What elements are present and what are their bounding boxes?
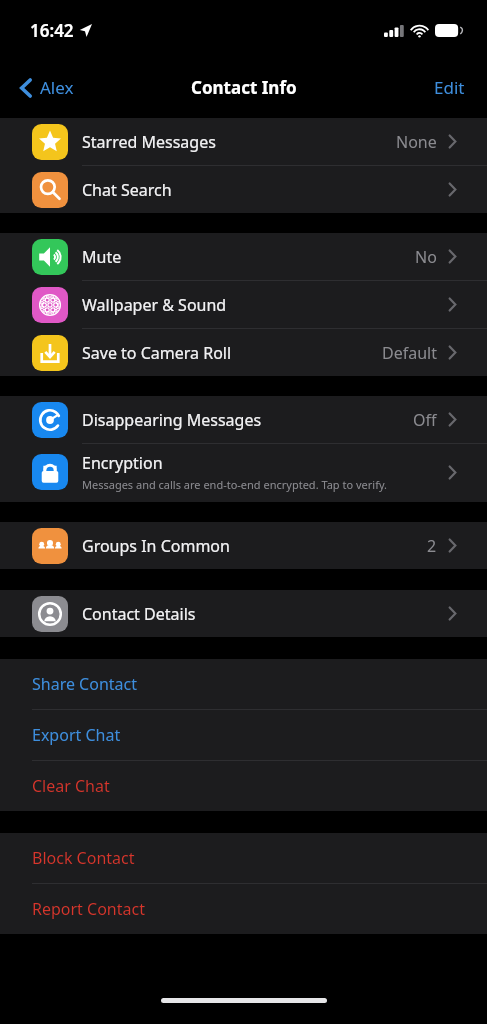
other: Encryption [32,454,68,490]
staticText: 2 [427,535,437,557]
button[interactable]: Alex [0,68,86,107]
button[interactable]: Clear Chat [0,761,487,811]
staticText: Contact Info [191,76,297,99]
button[interactable]: Export Chat [0,710,487,761]
button[interactable]: Mute [0,233,487,281]
staticText: 16:42 [30,19,74,42]
other: Mute [32,239,68,275]
staticText: Clear Chat [32,775,110,797]
button[interactable]: Save to camera roll [0,329,487,376]
button[interactable]: Wallpaper [0,281,487,329]
staticText: Block Contact [32,847,135,869]
staticText: Share Contact [32,673,138,695]
other: Groups in common [32,528,68,564]
button[interactable]: Encryption [0,444,487,502]
staticText: No [415,246,437,268]
staticText: Disappearing Messages [82,409,262,431]
staticText: Messages and calls are end-to-end encryp… [82,477,388,492]
staticText: None [396,131,437,153]
staticText: Groups In Common [82,535,230,557]
button[interactable]: Starred [0,118,487,166]
other: Disappearing messages [32,402,68,438]
staticText: Edit [434,76,465,99]
staticText: Wallpaper & Sound [82,294,227,316]
button[interactable]: Edit [412,66,487,109]
staticText: Report Contact [32,898,145,920]
button[interactable]: Block Contact [0,833,487,884]
staticText: Encryption [82,452,163,474]
button[interactable]: Report Contact [0,884,487,934]
staticText: Alex [40,76,74,99]
button[interactable]: Disappearing messages [0,396,487,444]
staticText: Export Chat [32,724,121,746]
other: Save to camera roll [32,335,68,371]
other: Search [32,172,68,208]
staticText: Default [382,342,437,364]
staticText: Contact Details [82,603,196,625]
button[interactable]: Contact details [0,590,487,637]
button[interactable]: Search [0,166,487,213]
other: Contact details [32,596,68,632]
button[interactable]: Groups in common [0,522,487,569]
button[interactable]: Share Contact [0,659,487,710]
staticText: Chat Search [82,179,172,201]
staticText: Mute [82,246,122,268]
other: Starred [32,124,68,160]
staticText: Off [413,409,437,431]
staticText: Starred Messages [82,131,216,153]
other: Wallpaper [32,287,68,323]
staticText: Save to Camera Roll [82,342,232,364]
